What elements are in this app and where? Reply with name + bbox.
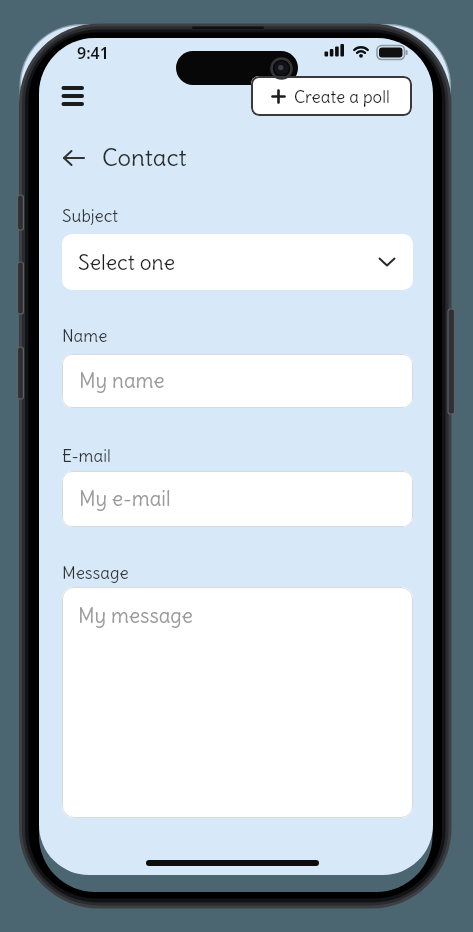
button[interactable]: My message xyxy=(62,587,413,818)
button[interactable]: Select one xyxy=(62,234,413,290)
button[interactable]: My e-mail xyxy=(62,471,413,527)
staticText: Name xyxy=(62,325,108,346)
button[interactable]: My name xyxy=(62,354,413,408)
staticText: My message xyxy=(78,603,193,629)
staticText: Create a poll xyxy=(294,86,390,107)
staticText: My e-mail xyxy=(79,486,171,512)
button[interactable]: Create a poll xyxy=(251,76,412,116)
staticText: Select one xyxy=(78,249,176,275)
staticText: 9:41 xyxy=(77,42,109,64)
staticText: Contact xyxy=(102,142,187,172)
button[interactable] xyxy=(57,144,91,172)
button[interactable] xyxy=(55,80,91,112)
staticText: Message xyxy=(62,562,129,583)
staticText: E-mail xyxy=(62,445,111,466)
staticText: My name xyxy=(79,368,165,394)
staticText: Subject xyxy=(62,205,119,226)
